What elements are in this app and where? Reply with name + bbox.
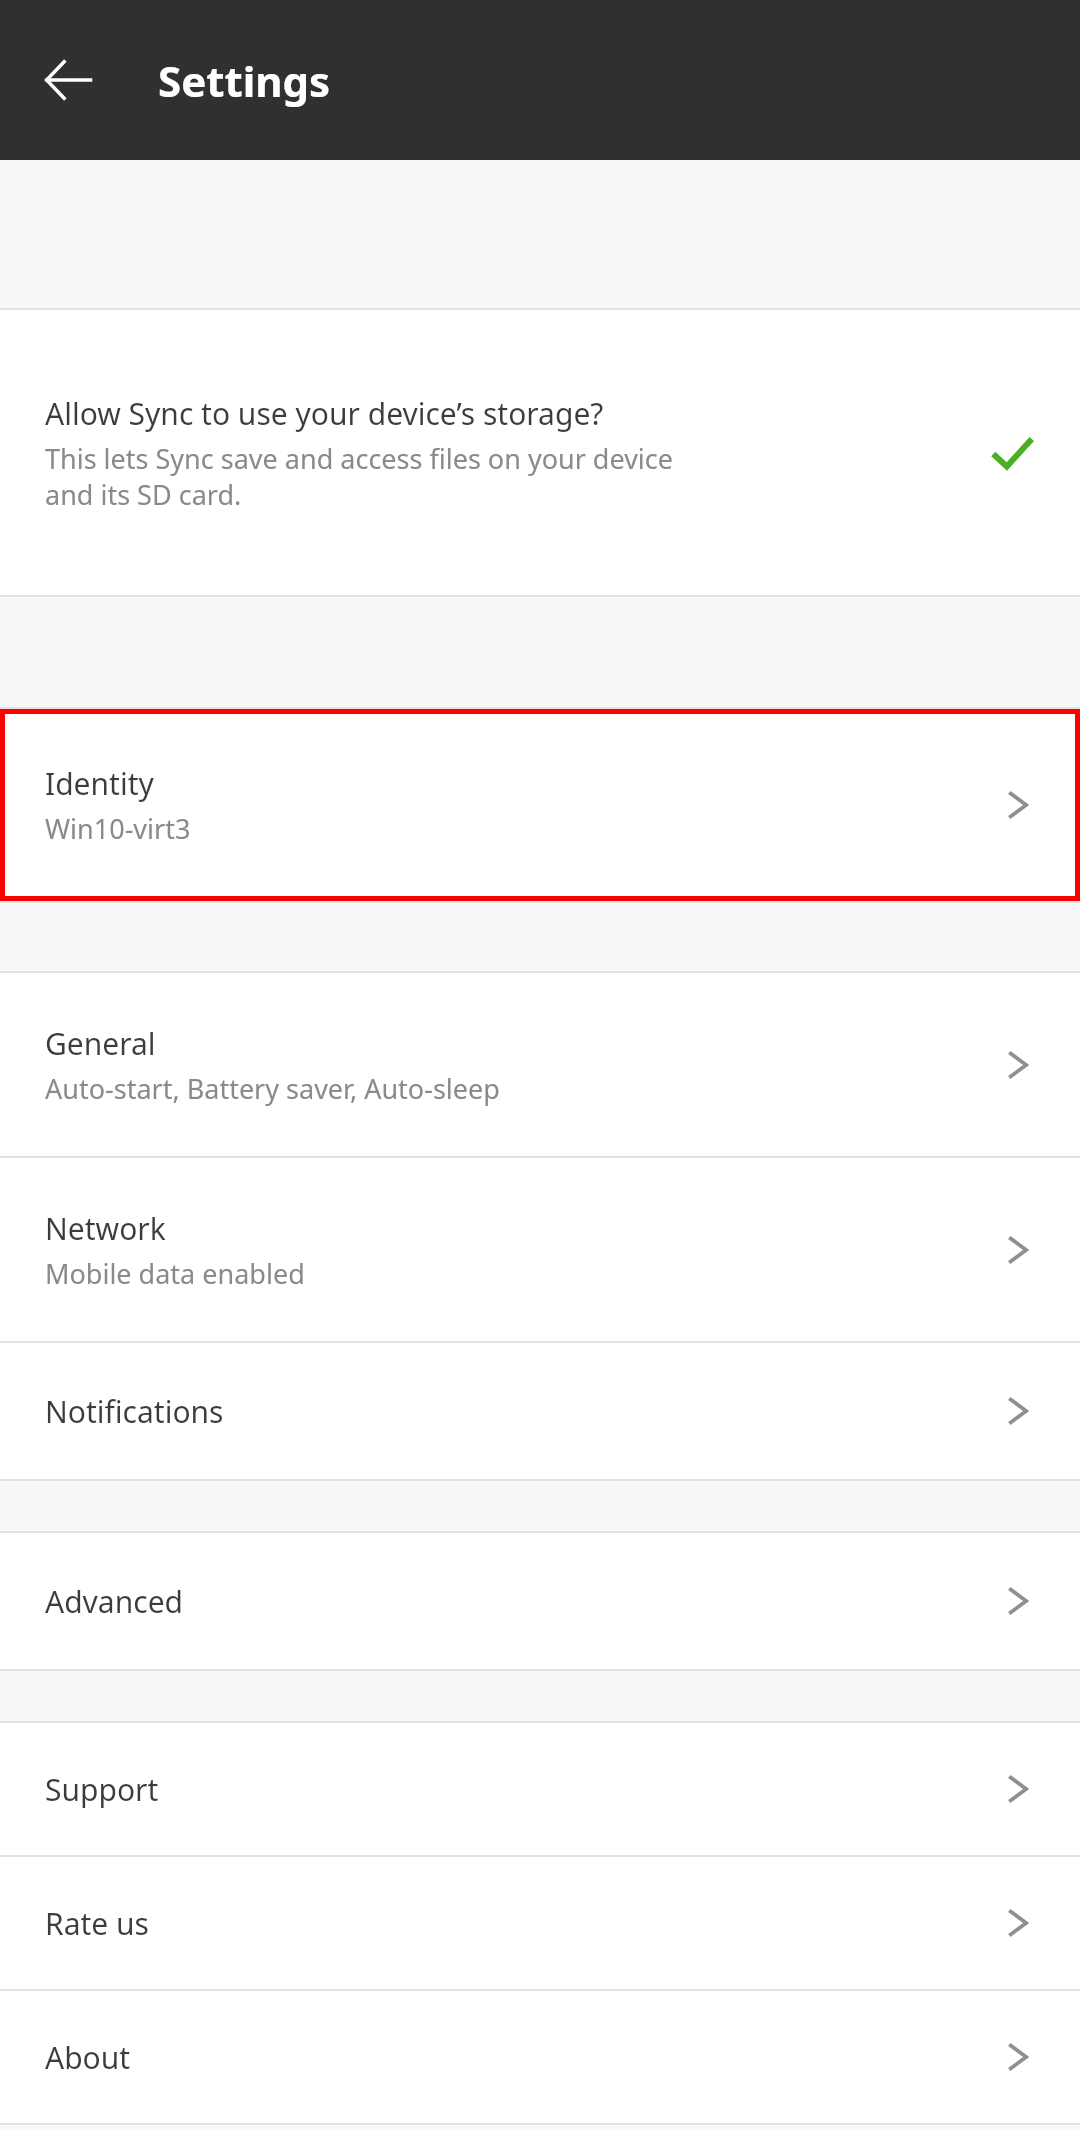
button[interactable]: Allow Sync to use your device’s storage? — [0, 310, 1080, 595]
staticText: Identity — [45, 763, 154, 804]
button[interactable]: Notifications — [0, 1343, 1080, 1479]
staticText: Mobile data enabled — [45, 1255, 992, 1292]
staticText: Rate us — [45, 1903, 149, 1944]
staticText: General — [45, 1023, 156, 1064]
button[interactable]: Identity — [0, 709, 1080, 901]
button[interactable]: Advanced — [0, 1533, 1080, 1669]
button[interactable]: About — [0, 1991, 1080, 2123]
staticText: This lets Sync save and access files on … — [45, 440, 972, 513]
button[interactable]: Rate us — [0, 1857, 1080, 1989]
button[interactable]: General — [0, 973, 1080, 1156]
staticText: About — [45, 2037, 131, 2078]
staticText: Auto-start, Battery saver, Auto-sleep — [45, 1070, 992, 1107]
staticText: Win10-virt3 — [45, 810, 992, 847]
button[interactable]: Network — [0, 1158, 1080, 1341]
staticText: Allow Sync to use your device’s storage? — [45, 393, 604, 434]
staticText: Notifications — [45, 1391, 224, 1432]
staticText: Support — [45, 1769, 159, 1810]
staticText: Settings — [158, 52, 331, 109]
button[interactable]: Support — [0, 1723, 1080, 1855]
staticText: Advanced — [45, 1581, 183, 1622]
staticText: Network — [45, 1208, 166, 1249]
button[interactable]: Back — [30, 42, 106, 118]
